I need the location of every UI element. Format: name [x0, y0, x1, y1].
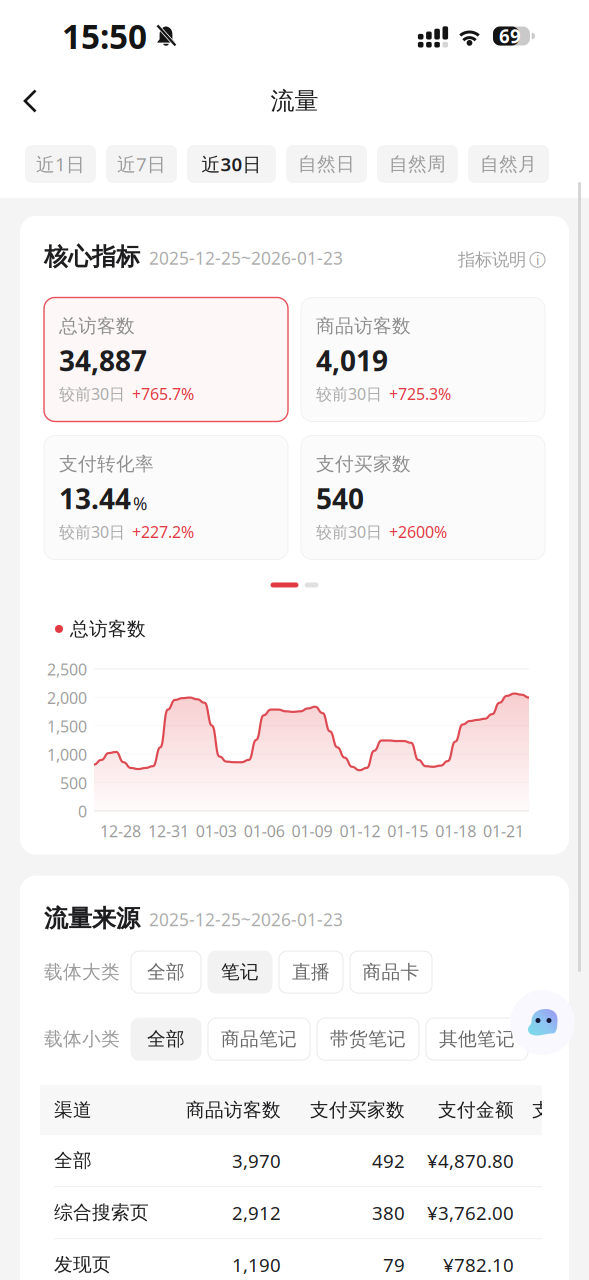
staticText: 笔记	[221, 961, 259, 984]
staticText: 自然周	[389, 152, 446, 175]
staticText: 全部	[147, 961, 185, 984]
staticText: 01-09	[291, 820, 332, 842]
staticText: 492	[372, 1148, 405, 1173]
button[interactable]: 其他笔记	[426, 1018, 528, 1060]
staticText: +725.3%	[389, 383, 451, 404]
staticText: 540	[316, 480, 364, 517]
staticText: 支付买家数	[310, 1099, 405, 1122]
staticText: 1,500	[47, 716, 87, 737]
staticText: 01-12	[339, 820, 380, 842]
staticText: 01-21	[483, 820, 524, 842]
staticText: 自然日	[298, 152, 355, 175]
staticText: ¥3,762.00	[427, 1200, 514, 1225]
staticText: +765.7%	[132, 383, 194, 404]
staticText: 商品笔记	[221, 1028, 297, 1051]
button[interactable]: 商品卡	[350, 951, 432, 993]
staticText: 指标说明	[458, 249, 526, 270]
staticText: 4,019	[316, 342, 388, 379]
staticText: 12-31	[148, 820, 189, 842]
staticText: 1,190	[232, 1252, 281, 1277]
staticText: %	[133, 492, 147, 515]
button[interactable]: 支付转化率	[44, 435, 288, 559]
staticText: +227.2%	[132, 521, 194, 542]
staticText: 直播	[292, 961, 330, 984]
staticText: 支付金额	[532, 1099, 589, 1122]
staticText: ¥4,870.80	[427, 1148, 514, 1173]
staticText: 500	[60, 772, 87, 794]
button[interactable]: 全部	[131, 1018, 201, 1060]
staticText: 较前30日	[316, 383, 382, 404]
staticText: 3,970	[232, 1148, 281, 1173]
staticText: 15:50	[62, 14, 147, 58]
staticText: 01-15	[387, 820, 428, 842]
staticText: 发现页	[54, 1253, 111, 1276]
staticText: 380	[372, 1200, 405, 1225]
button[interactable]: Back	[0, 74, 61, 127]
staticText: 综合搜索页	[54, 1201, 149, 1224]
button[interactable]: 自然月	[468, 145, 549, 183]
staticText: 近1日	[36, 152, 85, 176]
staticText: 流量来源	[44, 904, 140, 933]
staticText: +2600%	[389, 521, 447, 542]
staticText: 带货笔记	[330, 1028, 406, 1051]
staticText: 2025-12-25~2026-01-23	[149, 908, 343, 931]
button[interactable]: 直播	[279, 951, 343, 993]
staticText: 全部	[147, 1028, 185, 1051]
staticText: 较前30日	[59, 521, 125, 542]
staticText: 全部	[54, 1149, 92, 1172]
staticText: 2025-12-25~2026-01-23	[149, 246, 343, 269]
staticText: 商品访客数	[316, 314, 411, 337]
button[interactable]: 支付买家数	[301, 435, 545, 559]
button[interactable]: 总访客数	[44, 297, 288, 421]
staticText: 核心指标	[44, 242, 140, 271]
button[interactable]: 指标说明	[458, 249, 545, 271]
staticText: i	[536, 251, 539, 269]
staticText: 2,500	[47, 659, 87, 680]
button[interactable]: 笔记	[208, 951, 272, 993]
staticText: 商品访客数	[186, 1099, 281, 1122]
staticText: 自然月	[480, 152, 537, 175]
staticText: 支付买家数	[316, 452, 411, 475]
staticText: 流量	[270, 86, 318, 116]
staticText: 近30日	[201, 152, 261, 176]
staticText: 较前30日	[59, 383, 125, 404]
staticText: 69	[499, 24, 521, 48]
button[interactable]: 带货笔记	[317, 1018, 419, 1060]
button[interactable]: 近1日	[25, 145, 96, 183]
staticText: 2,000	[47, 687, 87, 708]
staticText: 12-28	[100, 820, 141, 842]
staticText: 0	[78, 801, 87, 822]
button[interactable]: 近7日	[106, 145, 177, 183]
button[interactable]: 自然周	[377, 145, 458, 183]
staticText: ¥782.10	[443, 1252, 514, 1277]
staticText: 79	[383, 1252, 405, 1277]
staticText: 较前30日	[316, 521, 382, 542]
staticText: 近7日	[117, 152, 166, 176]
staticText: 总访客数	[70, 617, 146, 640]
staticText: 载体小类	[44, 1028, 120, 1051]
button[interactable]: 全部	[131, 951, 201, 993]
staticText: 支付转化率	[59, 452, 154, 475]
button[interactable]: 近30日	[187, 145, 276, 183]
staticText: 载体大类	[44, 961, 120, 984]
staticText: 总访客数	[59, 314, 135, 337]
staticText: 商品卡	[362, 961, 419, 984]
staticText: 1,000	[47, 744, 87, 765]
staticText: 13.44	[59, 480, 131, 517]
staticText: 01-03	[196, 820, 237, 842]
staticText: 渠道	[54, 1099, 92, 1122]
staticText: 2,912	[232, 1200, 281, 1225]
staticText: 01-18	[435, 820, 476, 842]
button[interactable]: 自然日	[286, 145, 367, 183]
staticText: 01-06	[244, 820, 285, 842]
button[interactable]: AI assistant	[510, 990, 575, 1055]
staticText: 其他笔记	[439, 1028, 515, 1051]
staticText: 支付金额	[438, 1099, 514, 1122]
staticText: 34,887	[59, 342, 147, 379]
button[interactable]: 商品笔记	[208, 1018, 310, 1060]
button[interactable]: 商品访客数	[301, 297, 545, 421]
